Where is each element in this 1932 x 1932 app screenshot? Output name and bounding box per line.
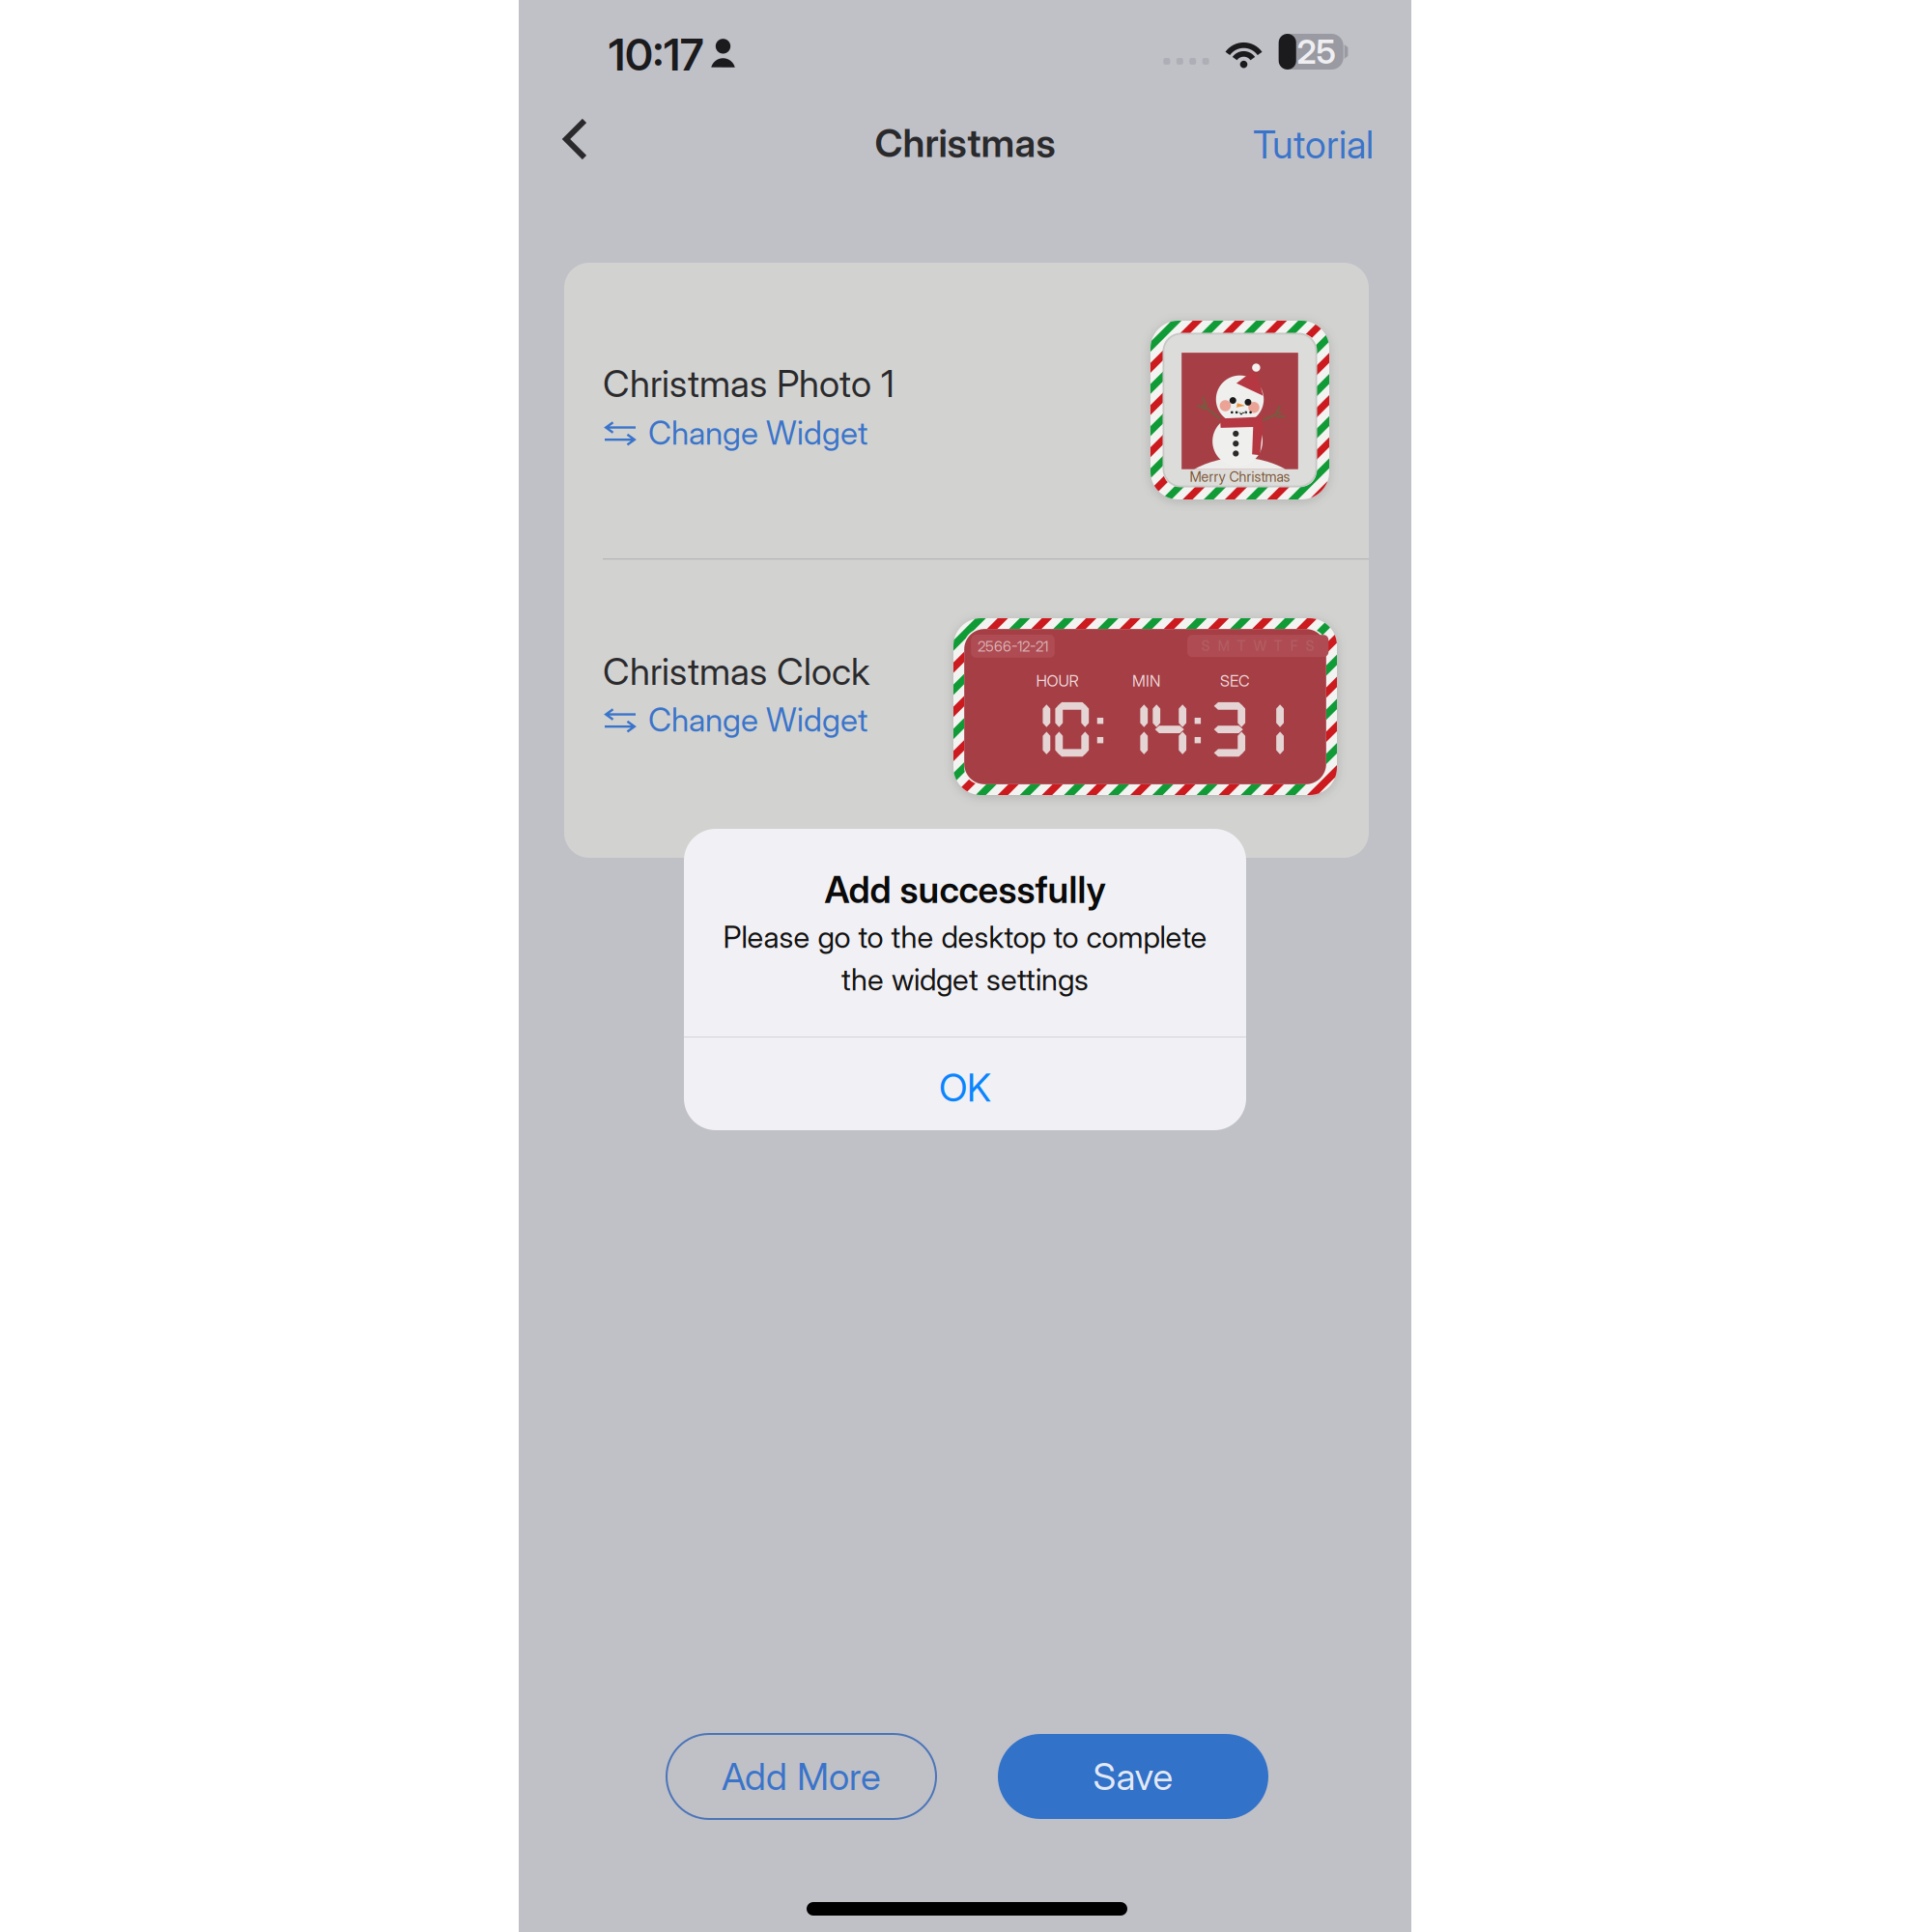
button[interactable]: Add More bbox=[667, 1734, 936, 1819]
button[interactable]: OK bbox=[684, 1041, 1246, 1134]
button[interactable]: Change Widget bbox=[605, 413, 867, 452]
staticText: Save bbox=[1093, 1754, 1173, 1799]
button[interactable]: Change Widget bbox=[605, 700, 867, 739]
staticText: MIN bbox=[1132, 672, 1160, 690]
staticText: S M T W T F S bbox=[1201, 638, 1314, 654]
staticText: Change Widget bbox=[648, 700, 867, 739]
staticText: HOUR bbox=[1036, 672, 1079, 690]
button[interactable]: Tutorial bbox=[1239, 106, 1387, 183]
staticText: Christmas Clock bbox=[603, 649, 869, 694]
staticText: 25 bbox=[1297, 31, 1335, 72]
staticText: Merry Christmas bbox=[1190, 468, 1290, 485]
staticText: SEC bbox=[1220, 672, 1250, 690]
staticText: 2566-12-21 bbox=[978, 637, 1048, 655]
staticText: Tutorial bbox=[1253, 122, 1374, 168]
staticText: Christmas Photo 1 bbox=[603, 361, 895, 406]
staticText: Please go to the desktop to complete bbox=[723, 919, 1207, 955]
button[interactable]: Back bbox=[544, 100, 607, 178]
staticText: the widget settings bbox=[841, 961, 1089, 998]
button[interactable]: Save bbox=[998, 1734, 1268, 1819]
staticText: Add successfully bbox=[824, 868, 1106, 912]
staticText: 10:17 bbox=[609, 28, 703, 81]
staticText: Add More bbox=[722, 1754, 881, 1799]
staticText: Change Widget bbox=[648, 413, 867, 452]
staticText: OK bbox=[939, 1065, 991, 1111]
staticText: Christmas bbox=[875, 120, 1055, 166]
